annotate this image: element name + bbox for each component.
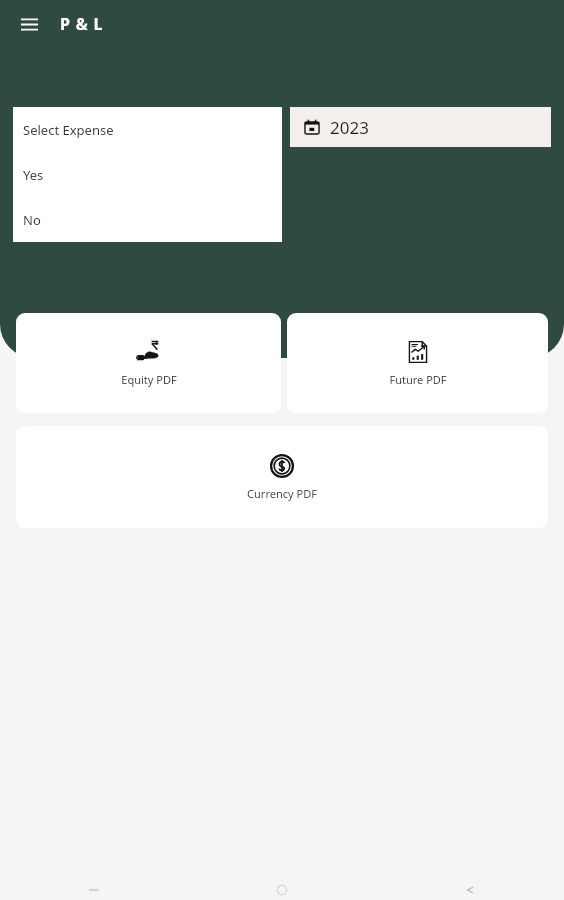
button[interactable]: Open navigation menu (12, 7, 46, 41)
staticText: Yes (23, 166, 44, 184)
staticText: Currency PDF (247, 486, 317, 501)
button[interactable]: 2023 (290, 107, 551, 147)
button[interactable]: Future PDF (287, 313, 548, 413)
staticText: Future PDF (389, 372, 447, 387)
staticText: P & L (60, 13, 104, 35)
button[interactable]: Select Expense (13, 107, 282, 152)
staticText: 2023 (330, 116, 369, 139)
button[interactable]: Equity PDF (16, 313, 281, 413)
staticText: Select Expense (23, 121, 114, 139)
button[interactable]: No (13, 197, 282, 242)
staticText: No (23, 211, 41, 229)
button[interactable]: Yes (13, 152, 282, 197)
button[interactable]: Currency PDF (16, 426, 548, 528)
staticText: Equity PDF (121, 372, 177, 387)
